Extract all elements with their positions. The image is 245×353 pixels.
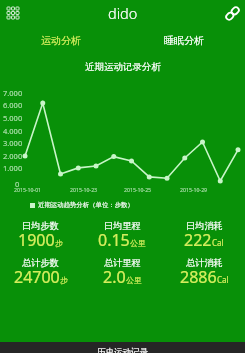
staticText: 总计消耗 — [186, 257, 223, 268]
staticText: 4.000 — [3, 126, 23, 136]
staticText: 222 — [184, 229, 212, 251]
staticText: 2.0 — [103, 266, 126, 288]
staticText: 睡眠分析 — [164, 34, 204, 47]
staticText: 总计里程 — [104, 257, 141, 268]
button[interactable]: 日均步数 — [0, 220, 81, 250]
staticText: 总计步数 — [22, 257, 59, 268]
staticText: 2015-10-29 — [180, 186, 208, 193]
staticText: 日均里程 — [104, 220, 141, 231]
staticText: 近期运动记录分析 — [85, 61, 161, 73]
staticText: 运动分析 — [41, 34, 81, 47]
staticText: 7.000 — [3, 88, 23, 98]
staticText: 近期运动趋势分析（单位：步数） — [38, 201, 134, 209]
staticText: 2886 — [180, 266, 217, 288]
staticText: 2015-10-23 — [70, 186, 98, 193]
button[interactable]: 日均里程 — [81, 220, 163, 250]
staticText: 公里 — [130, 238, 146, 248]
staticText: 步 — [60, 275, 68, 285]
staticText: 1900 — [18, 229, 55, 251]
staticText: 历史运动记录 — [97, 347, 148, 353]
staticText: 1.000 — [3, 163, 23, 173]
staticText: Cal — [217, 274, 229, 285]
staticText: 日均步数 — [22, 220, 59, 231]
staticText: 2015-10-01 — [14, 186, 42, 193]
staticText: 0.15 — [98, 229, 130, 251]
staticText: dido — [108, 3, 138, 23]
staticText: 3.000 — [3, 138, 23, 148]
staticText: Cal — [212, 237, 224, 248]
staticText: 公里 — [126, 275, 142, 285]
staticText: 0 — [15, 179, 20, 189]
button[interactable]: 总计步数 — [0, 257, 81, 287]
button[interactable]: Link — [222, 3, 242, 23]
button[interactable]: 总计里程 — [81, 257, 163, 287]
staticText: 2.000 — [3, 151, 23, 161]
staticText: 日均消耗 — [186, 220, 223, 231]
button[interactable]: 睡眠分析 — [122, 30, 245, 51]
staticText: 6.000 — [3, 100, 23, 110]
button[interactable]: 历史运动记录 — [0, 342, 245, 353]
staticText: 24700 — [14, 266, 60, 288]
button[interactable]: 日均消耗 — [163, 220, 245, 250]
staticText: 5.000 — [3, 113, 23, 123]
staticText: 2015-10-25 — [124, 186, 152, 193]
button[interactable]: 运动分析 — [0, 30, 122, 51]
staticText: 步 — [55, 238, 63, 248]
button[interactable]: 总计消耗 — [163, 257, 245, 287]
button[interactable]: Menu — [3, 3, 23, 23]
